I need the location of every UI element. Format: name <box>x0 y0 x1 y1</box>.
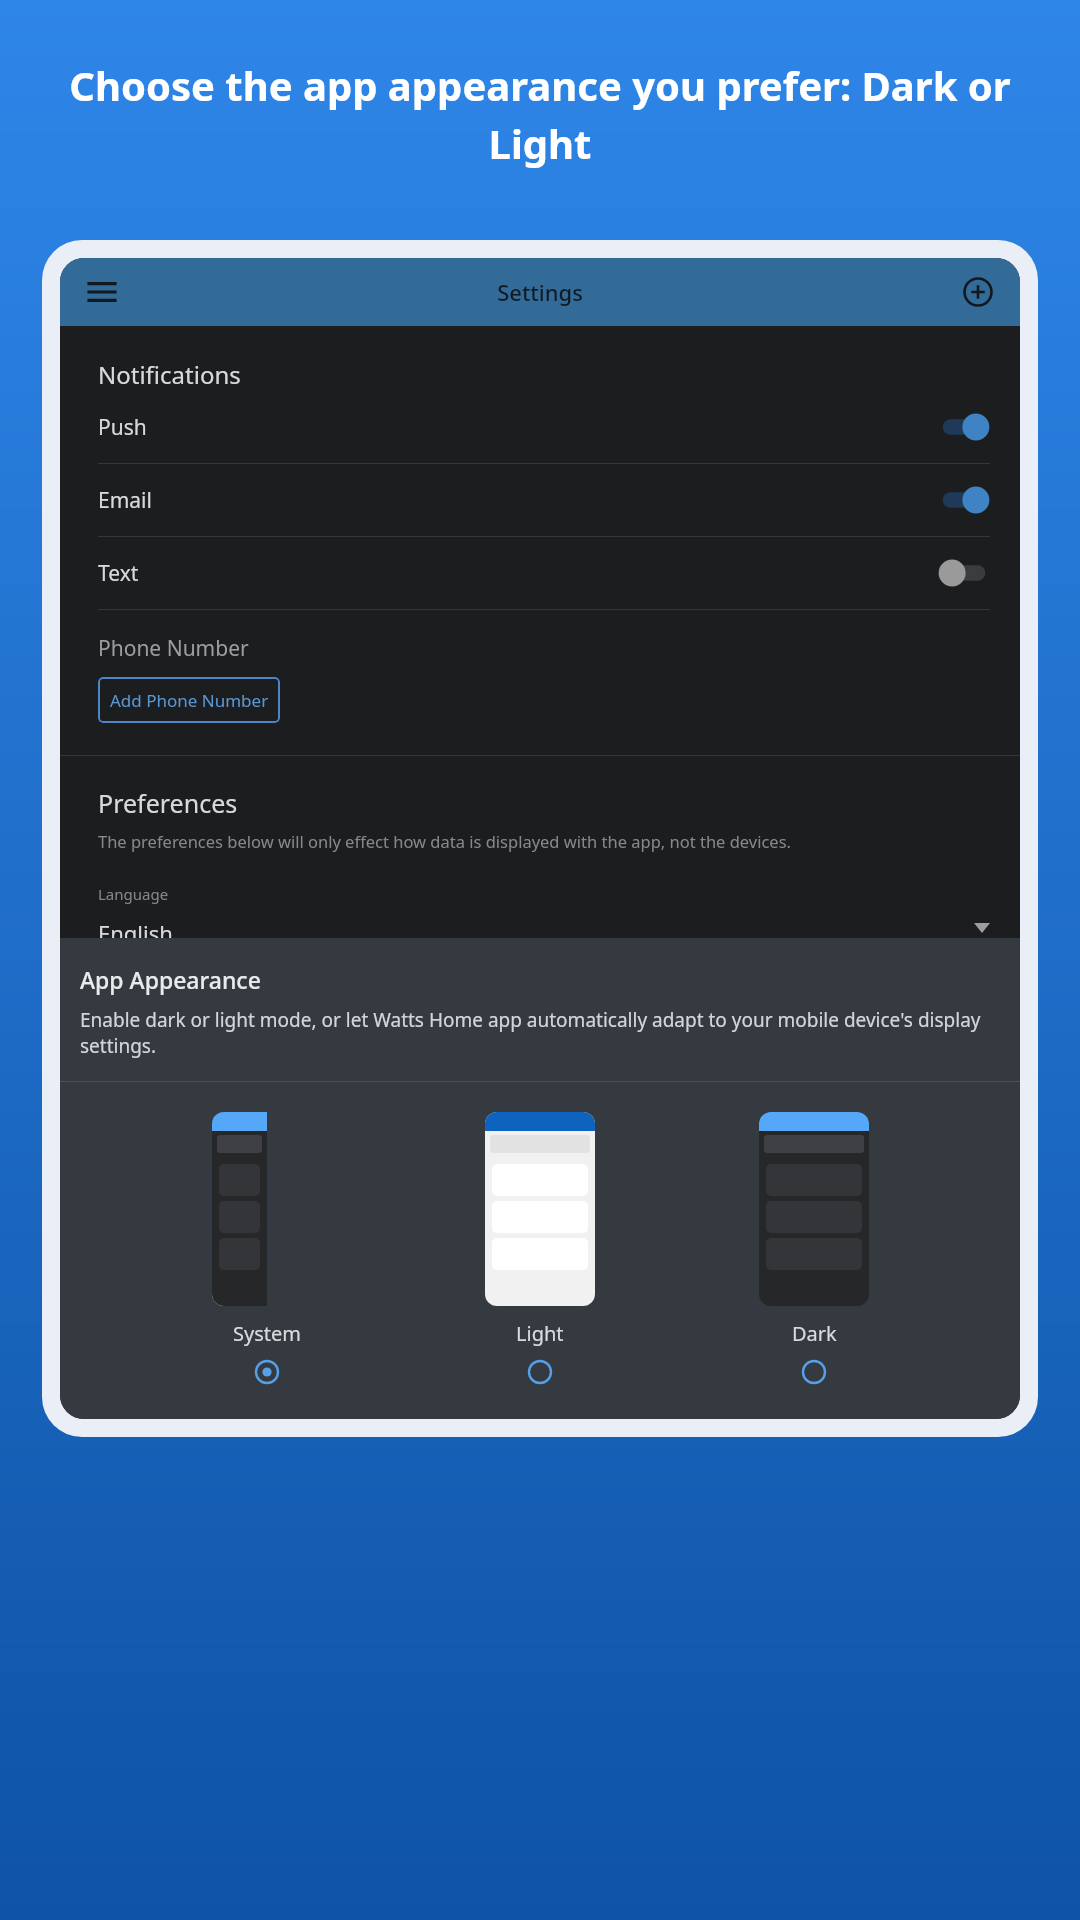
staticText: Choose the app appearance you prefer: Da… <box>60 58 1020 170</box>
staticText: Light <box>516 1320 564 1347</box>
staticText: Email <box>98 486 938 515</box>
staticText: The preferences below will only effect h… <box>98 830 791 852</box>
staticText: Phone Number <box>98 634 249 663</box>
button[interactable]: Open navigation menu <box>74 264 130 320</box>
staticText: Notifications <box>98 358 241 391</box>
button[interactable]: Add <box>950 264 1006 320</box>
button[interactable]: Add Phone Number <box>98 677 280 723</box>
staticText: Text <box>98 559 938 588</box>
button[interactable]: Light <box>473 1112 607 1385</box>
button[interactable]: System <box>200 1112 334 1385</box>
button[interactable]: Email <box>98 464 990 536</box>
staticText: System <box>233 1320 301 1347</box>
button[interactable]: Push <box>98 391 990 463</box>
button[interactable]: Text <box>98 537 990 609</box>
staticText: App Appearance <box>80 964 261 995</box>
staticText: Enable dark or light mode, or let Watts … <box>80 1007 1000 1059</box>
staticText: English <box>98 918 974 938</box>
staticText: Language <box>98 884 169 904</box>
button[interactable]: Dark <box>747 1112 881 1385</box>
staticText: Push <box>98 413 938 442</box>
staticText: Dark <box>792 1320 837 1347</box>
staticText: Settings <box>497 277 583 307</box>
staticText: Add Phone Number <box>110 689 269 712</box>
staticText: Preferences <box>98 786 238 820</box>
button[interactable]: Language <box>98 884 990 938</box>
